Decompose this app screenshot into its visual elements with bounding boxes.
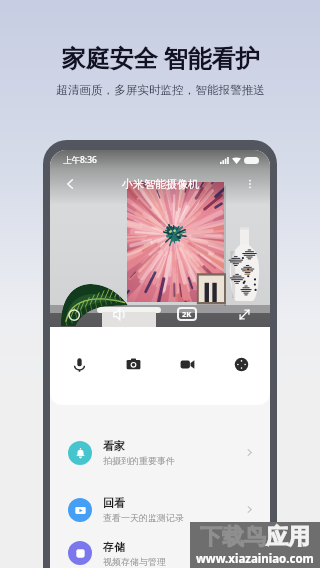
button[interactable]: More options xyxy=(238,172,262,196)
staticText: 查看一天的监测记录 xyxy=(103,512,184,523)
staticText: 视频存储与管理 xyxy=(103,556,166,567)
staticText: 2K xyxy=(182,309,192,319)
button[interactable]: Volume xyxy=(108,303,130,325)
button[interactable]: Record video xyxy=(168,345,206,383)
staticText: 拍摄到的重要事件 xyxy=(103,455,175,466)
staticText: 超清画质，多屏实时监控，智能报警推送 xyxy=(56,83,265,98)
staticText: www.xiazainiao.com xyxy=(196,551,314,567)
button[interactable]: 2K xyxy=(177,307,197,321)
staticText: 上午8:36 xyxy=(63,154,97,166)
button[interactable]: 回看 xyxy=(50,481,270,538)
button[interactable]: 看家 xyxy=(50,424,270,481)
button[interactable]: Back xyxy=(58,172,82,196)
button[interactable]: Microphone xyxy=(60,345,98,383)
staticText: 回看 xyxy=(103,496,125,510)
button[interactable]: Fullscreen xyxy=(233,303,255,325)
button[interactable]: 存储 xyxy=(50,538,270,568)
staticText: 小米智能摄像机 xyxy=(122,177,199,191)
staticText: 应用 xyxy=(266,523,310,551)
staticText: 下载鸟 xyxy=(200,523,266,551)
button[interactable]: More xyxy=(222,345,260,383)
staticText: 看家 xyxy=(103,439,125,453)
staticText: 存储 xyxy=(103,540,125,554)
button[interactable]: Take photo xyxy=(114,345,152,383)
staticText: 家庭安全 智能看护 xyxy=(61,41,260,74)
